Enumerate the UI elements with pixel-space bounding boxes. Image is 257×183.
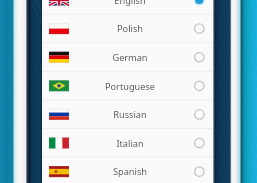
staticText: Spanish bbox=[113, 165, 147, 178]
button[interactable]: Spanish bbox=[42, 157, 213, 183]
staticText: German bbox=[112, 51, 148, 64]
staticText: Russian bbox=[113, 108, 147, 121]
button[interactable]: English bbox=[42, 0, 213, 15]
button[interactable]: Italian bbox=[42, 129, 213, 158]
staticText: Italian bbox=[116, 137, 144, 150]
button[interactable]: Russian bbox=[42, 100, 213, 129]
staticText: Polish bbox=[117, 22, 143, 35]
staticText: Portuguese bbox=[105, 80, 155, 93]
button[interactable]: Polish bbox=[42, 14, 213, 43]
button[interactable]: Portuguese bbox=[42, 72, 213, 101]
button[interactable]: German bbox=[42, 43, 213, 72]
staticText: English bbox=[114, 0, 146, 7]
